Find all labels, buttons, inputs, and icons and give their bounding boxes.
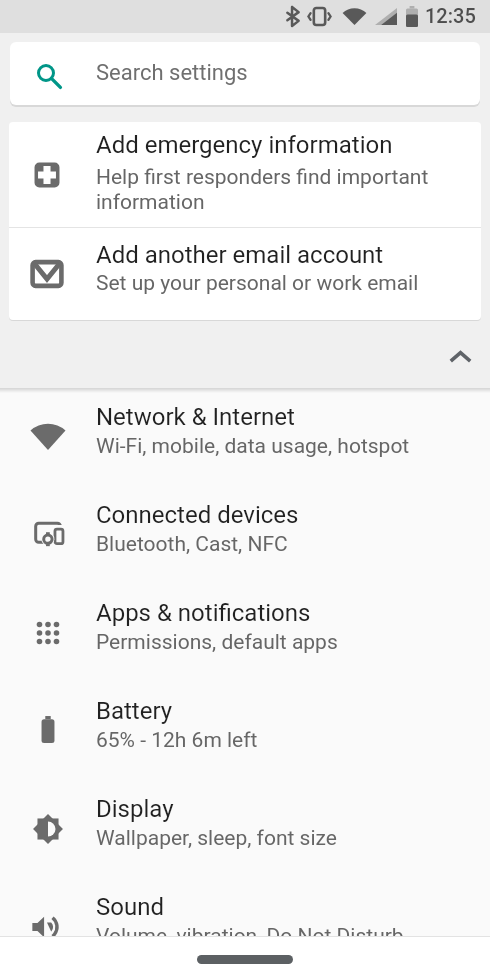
staticText: 12:35 xyxy=(425,4,476,27)
staticText: Add another email account xyxy=(96,241,384,269)
button[interactable]: Add another email account xyxy=(9,228,481,320)
staticText: Volume, vibration, Do Not Disturb xyxy=(96,924,404,949)
staticText: Search settings xyxy=(96,60,248,86)
button[interactable]: Display xyxy=(0,780,490,878)
button[interactable]: Connected devices xyxy=(0,486,490,584)
staticText: Sound xyxy=(96,893,164,921)
staticText: Battery xyxy=(96,697,173,725)
staticText: Network & Internet xyxy=(96,403,295,431)
button[interactable] xyxy=(197,955,293,964)
staticText: 65% - 12h 6m left xyxy=(96,728,258,753)
staticText: Display xyxy=(96,795,174,823)
staticText: Bluetooth, Cast, NFC xyxy=(96,532,288,557)
button[interactable] xyxy=(434,330,486,382)
staticText: Help first responders find important inf… xyxy=(96,165,429,215)
staticText: Apps & notifications xyxy=(96,599,311,627)
staticText: Wallpaper, sleep, font size xyxy=(96,826,337,851)
staticText: Connected devices xyxy=(96,501,299,529)
button[interactable]: Search settings xyxy=(10,42,480,105)
button[interactable]: Apps & notifications xyxy=(0,584,490,682)
button[interactable]: Network & Internet xyxy=(0,388,490,486)
button[interactable]: Battery xyxy=(0,682,490,780)
staticText: Set up your personal or work email xyxy=(96,271,419,296)
button[interactable]: Sound xyxy=(0,878,490,976)
staticText: Wi-Fi, mobile, data usage, hotspot xyxy=(96,434,410,459)
button[interactable]: Add emergency information xyxy=(9,122,481,227)
staticText: Permissions, default apps xyxy=(96,630,338,655)
staticText: Add emergency information xyxy=(96,131,393,159)
